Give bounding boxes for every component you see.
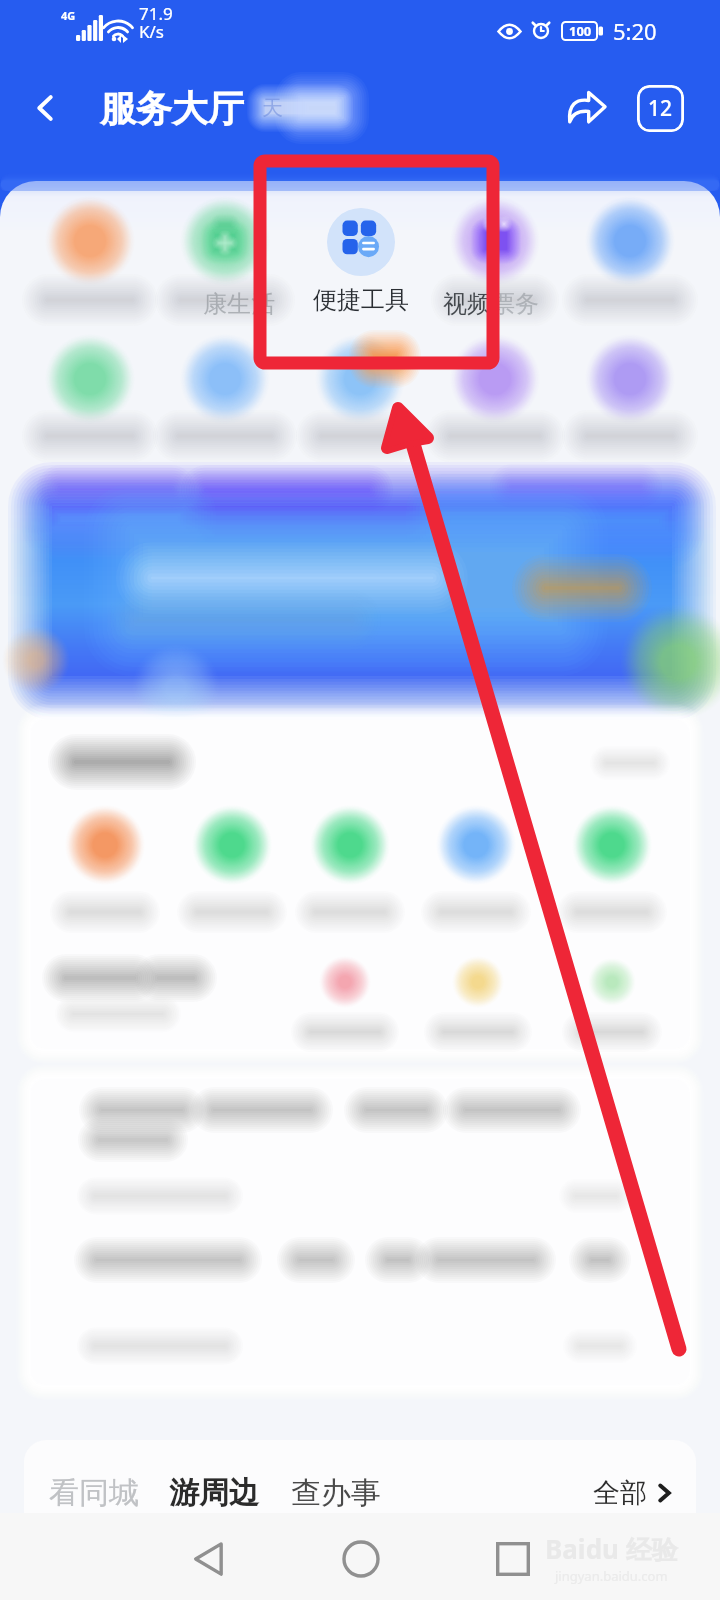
button[interactable]: 查办事 (288, 1466, 384, 1520)
staticText: 全部 (593, 1476, 647, 1510)
staticText: 便捷工具 (311, 285, 411, 315)
button[interactable]: Back (179, 1529, 239, 1589)
button[interactable]: 看同城 (46, 1466, 142, 1520)
staticText: 12 (648, 94, 673, 123)
staticText: 看同城 (49, 1474, 139, 1512)
staticText: 5:20 (613, 16, 657, 46)
button[interactable]: Share (563, 84, 611, 132)
staticText: 视频 (443, 289, 491, 319)
staticText: 服务大厅 (100, 86, 244, 131)
button[interactable]: Recent apps (483, 1529, 543, 1589)
staticText: 天 (262, 95, 283, 121)
button[interactable]: 全部 (590, 1468, 678, 1518)
button[interactable]: Open tabs, 12 (637, 85, 684, 132)
button[interactable]: Back (22, 85, 68, 131)
button[interactable]: 游周边 (166, 1466, 262, 1520)
button[interactable]: 便捷工具 (311, 208, 411, 315)
staticText: 票务 (491, 289, 539, 319)
staticText: K/s (139, 20, 164, 43)
staticText: 康生活 (203, 289, 275, 319)
staticText: jingyan.baidu.com (555, 1567, 668, 1585)
staticText: 4G (61, 8, 76, 23)
staticText: 游周边 (169, 1474, 259, 1512)
staticText: 100 (569, 22, 592, 40)
staticText: 71.9 (139, 2, 173, 25)
staticText: 查办事 (291, 1474, 381, 1512)
staticText: Baidu 经验 (545, 1531, 678, 1567)
button[interactable]: Home (331, 1529, 391, 1589)
